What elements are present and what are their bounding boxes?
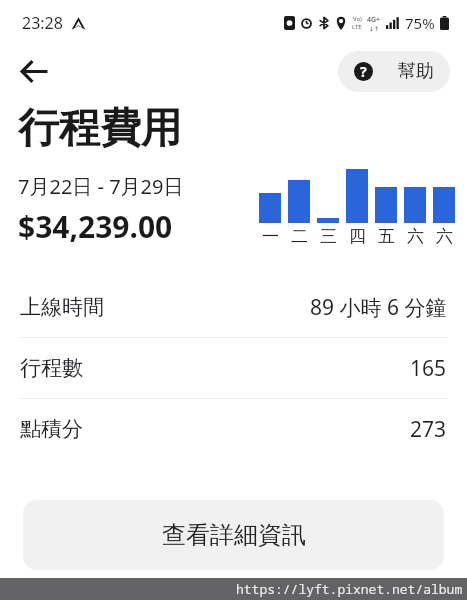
staticText: 行程數 <box>20 355 83 381</box>
staticText: Vo) <box>353 15 362 23</box>
staticText: 幫助 <box>398 60 434 83</box>
button[interactable]: 行程數 <box>0 338 467 398</box>
staticText: https://lyft.pixnet.net/album <box>236 580 463 598</box>
staticText: 273 <box>410 415 447 444</box>
button[interactable]: 查看詳細資訊 <box>23 500 444 570</box>
staticText: 23:28 <box>22 12 63 34</box>
staticText: 165 <box>410 354 447 383</box>
staticText: $34,239.00 <box>18 206 173 247</box>
staticText: LTE <box>352 23 362 31</box>
staticText: 五 <box>378 226 395 247</box>
button[interactable]: Back <box>12 49 56 93</box>
staticText: ↓↑ <box>369 25 380 32</box>
staticText: 4G+ <box>367 15 381 25</box>
staticText: 查看詳細資訊 <box>162 520 306 550</box>
staticText: 點積分 <box>20 416 83 442</box>
staticText: 三 <box>320 226 337 247</box>
button[interactable]: ? <box>338 51 450 92</box>
staticText: ? <box>360 62 367 81</box>
staticText: 六 <box>436 226 453 247</box>
staticText: 上線時間 <box>20 294 104 320</box>
staticText: 一 <box>262 226 279 247</box>
staticText: 四 <box>349 226 366 247</box>
staticText: 7月22日 - 7月29日 <box>18 173 184 200</box>
staticText: 二 <box>291 226 308 247</box>
button[interactable]: 點積分 <box>0 399 467 459</box>
staticText: 行程費用 <box>18 103 182 155</box>
staticText: 六 <box>407 226 424 247</box>
staticText: 75% <box>405 13 435 33</box>
staticText: 89 小時 6 分鐘 <box>310 293 447 322</box>
button[interactable]: 上線時間 <box>0 277 467 337</box>
